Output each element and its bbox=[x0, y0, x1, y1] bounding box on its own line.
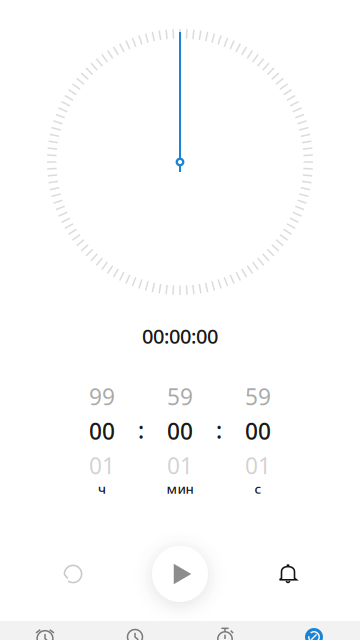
staticText: 00 bbox=[89, 416, 115, 446]
button[interactable]: Clock bbox=[90, 624, 180, 640]
staticText: 59 bbox=[245, 381, 271, 411]
button[interactable]: Stopwatch bbox=[180, 624, 270, 640]
staticText: 01 bbox=[245, 450, 271, 480]
button[interactable]: Alarm bbox=[0, 624, 90, 640]
button[interactable]: Start timer bbox=[140, 534, 220, 614]
staticText: с bbox=[254, 480, 261, 497]
staticText: 99 bbox=[89, 381, 115, 411]
staticText: мин bbox=[166, 480, 193, 497]
button[interactable]: Timer bbox=[269, 624, 359, 640]
staticText: 00 bbox=[167, 416, 193, 446]
staticText: 59 bbox=[167, 381, 193, 411]
staticText: : bbox=[216, 415, 222, 445]
staticText: 01 bbox=[167, 450, 193, 480]
button[interactable]: Ringtone bbox=[257, 543, 319, 605]
staticText: ч bbox=[98, 480, 106, 497]
staticText: 00 bbox=[245, 416, 271, 446]
staticText: 01 bbox=[89, 450, 115, 480]
staticText: 00:00:00 bbox=[142, 323, 218, 349]
staticText: : bbox=[138, 415, 144, 445]
button[interactable]: Reset bbox=[42, 543, 104, 605]
